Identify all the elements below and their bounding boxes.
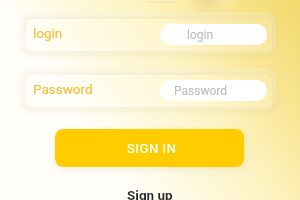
button[interactable]: login <box>21 12 276 54</box>
staticText: Password <box>174 84 228 98</box>
staticText: SIGN IN <box>127 141 177 156</box>
button[interactable]: SIGN IN <box>55 129 244 167</box>
button[interactable]: Password <box>21 68 276 110</box>
staticText: Sign up <box>127 187 173 200</box>
staticText: login <box>187 28 214 42</box>
staticText: Password <box>33 81 93 97</box>
staticText: login <box>33 25 63 41</box>
button[interactable]: Sign up <box>123 186 177 200</box>
